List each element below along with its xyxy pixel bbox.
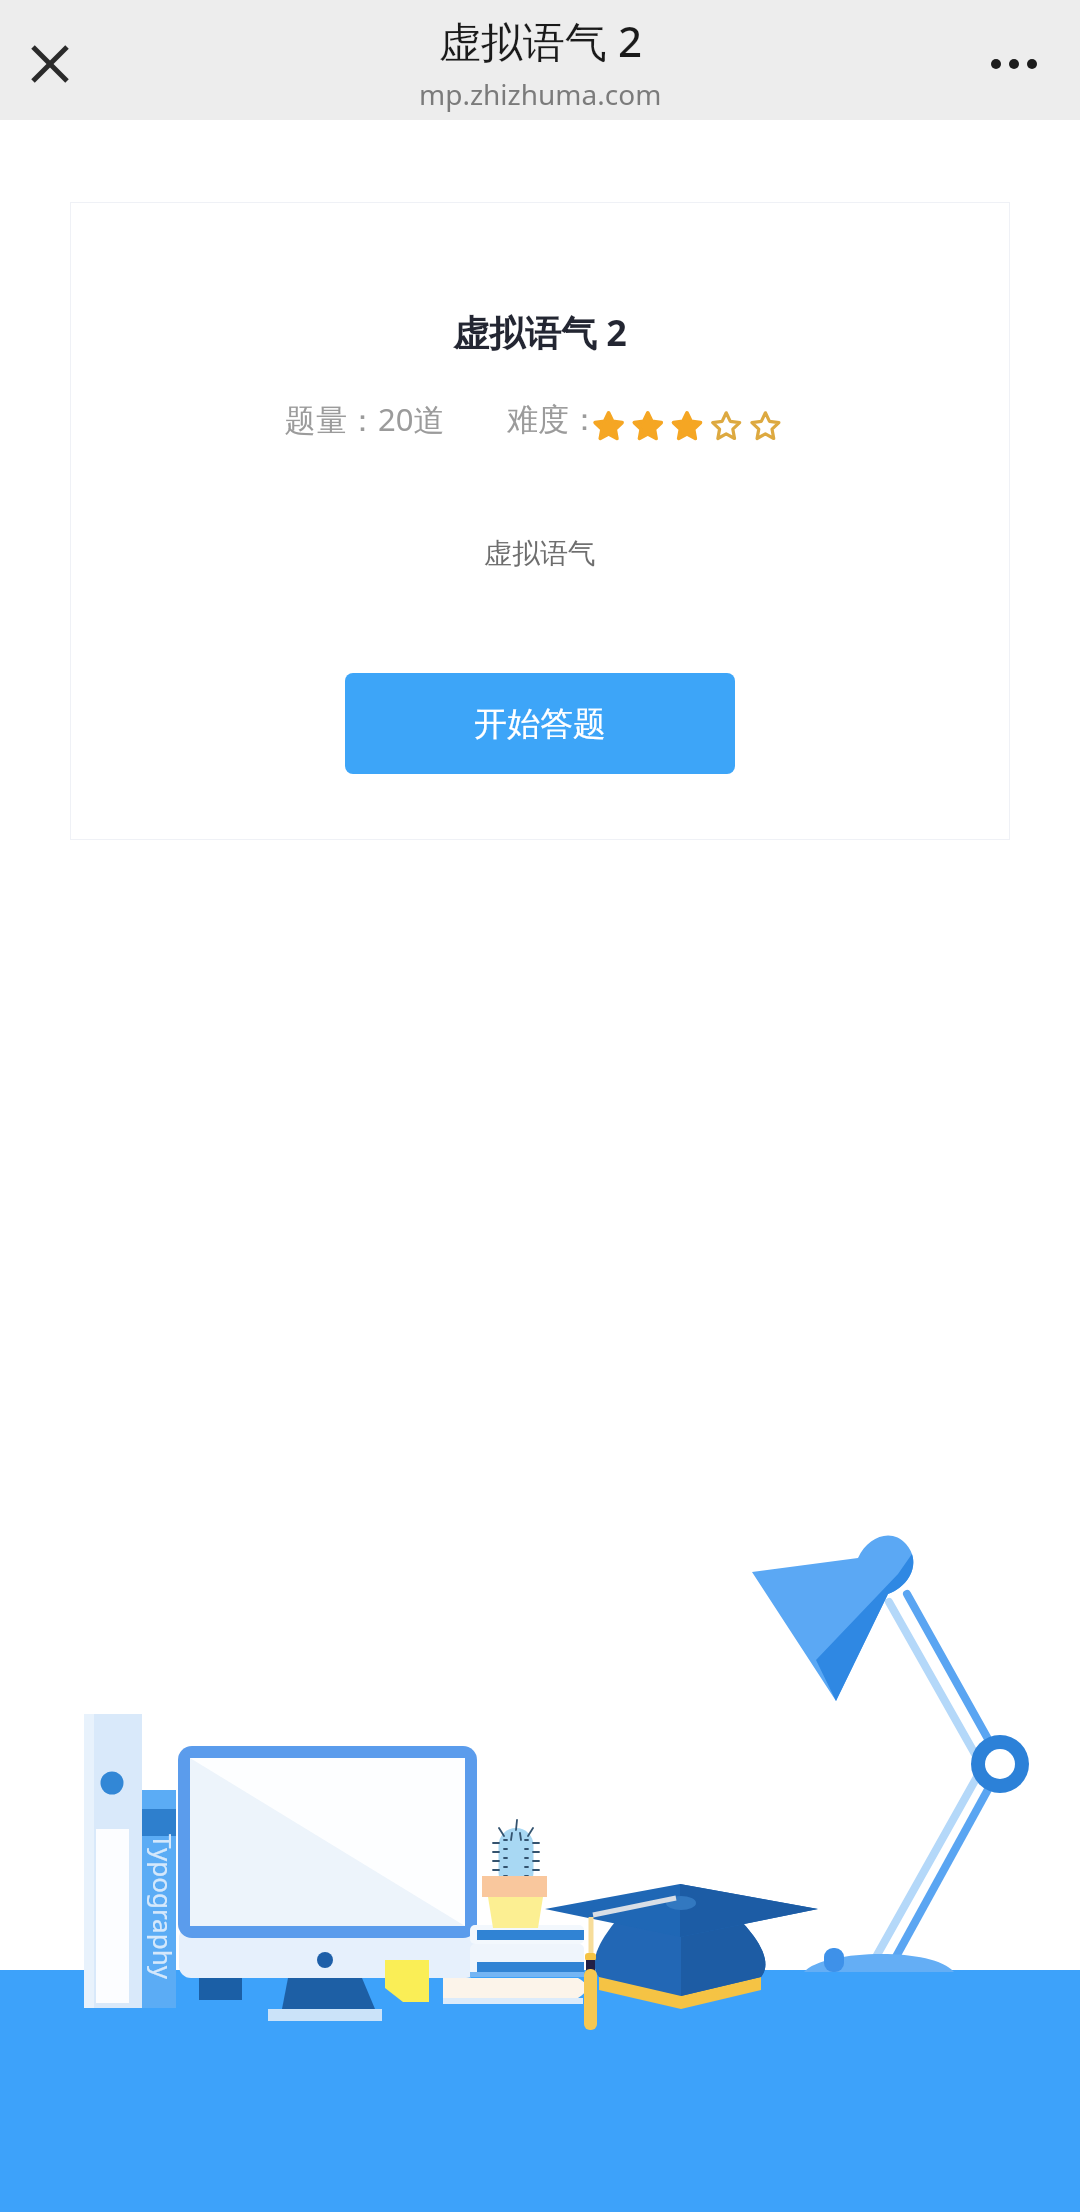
button[interactable]: Close — [13, 27, 87, 101]
button[interactable]: More options — [977, 27, 1051, 101]
staticText: 虚拟语气 2 — [439, 12, 642, 69]
staticText: Typography — [146, 1834, 181, 1980]
staticText: 开始答题 — [474, 703, 606, 745]
staticText: 题量：20道 — [285, 398, 445, 440]
button[interactable]: 开始答题 — [345, 673, 735, 774]
staticText: mp.zhizhuma.com — [419, 75, 662, 113]
staticText: 难度： — [507, 400, 600, 439]
staticText: 虚拟语气 2 — [453, 308, 627, 357]
staticText: 虚拟语气 — [484, 536, 596, 571]
